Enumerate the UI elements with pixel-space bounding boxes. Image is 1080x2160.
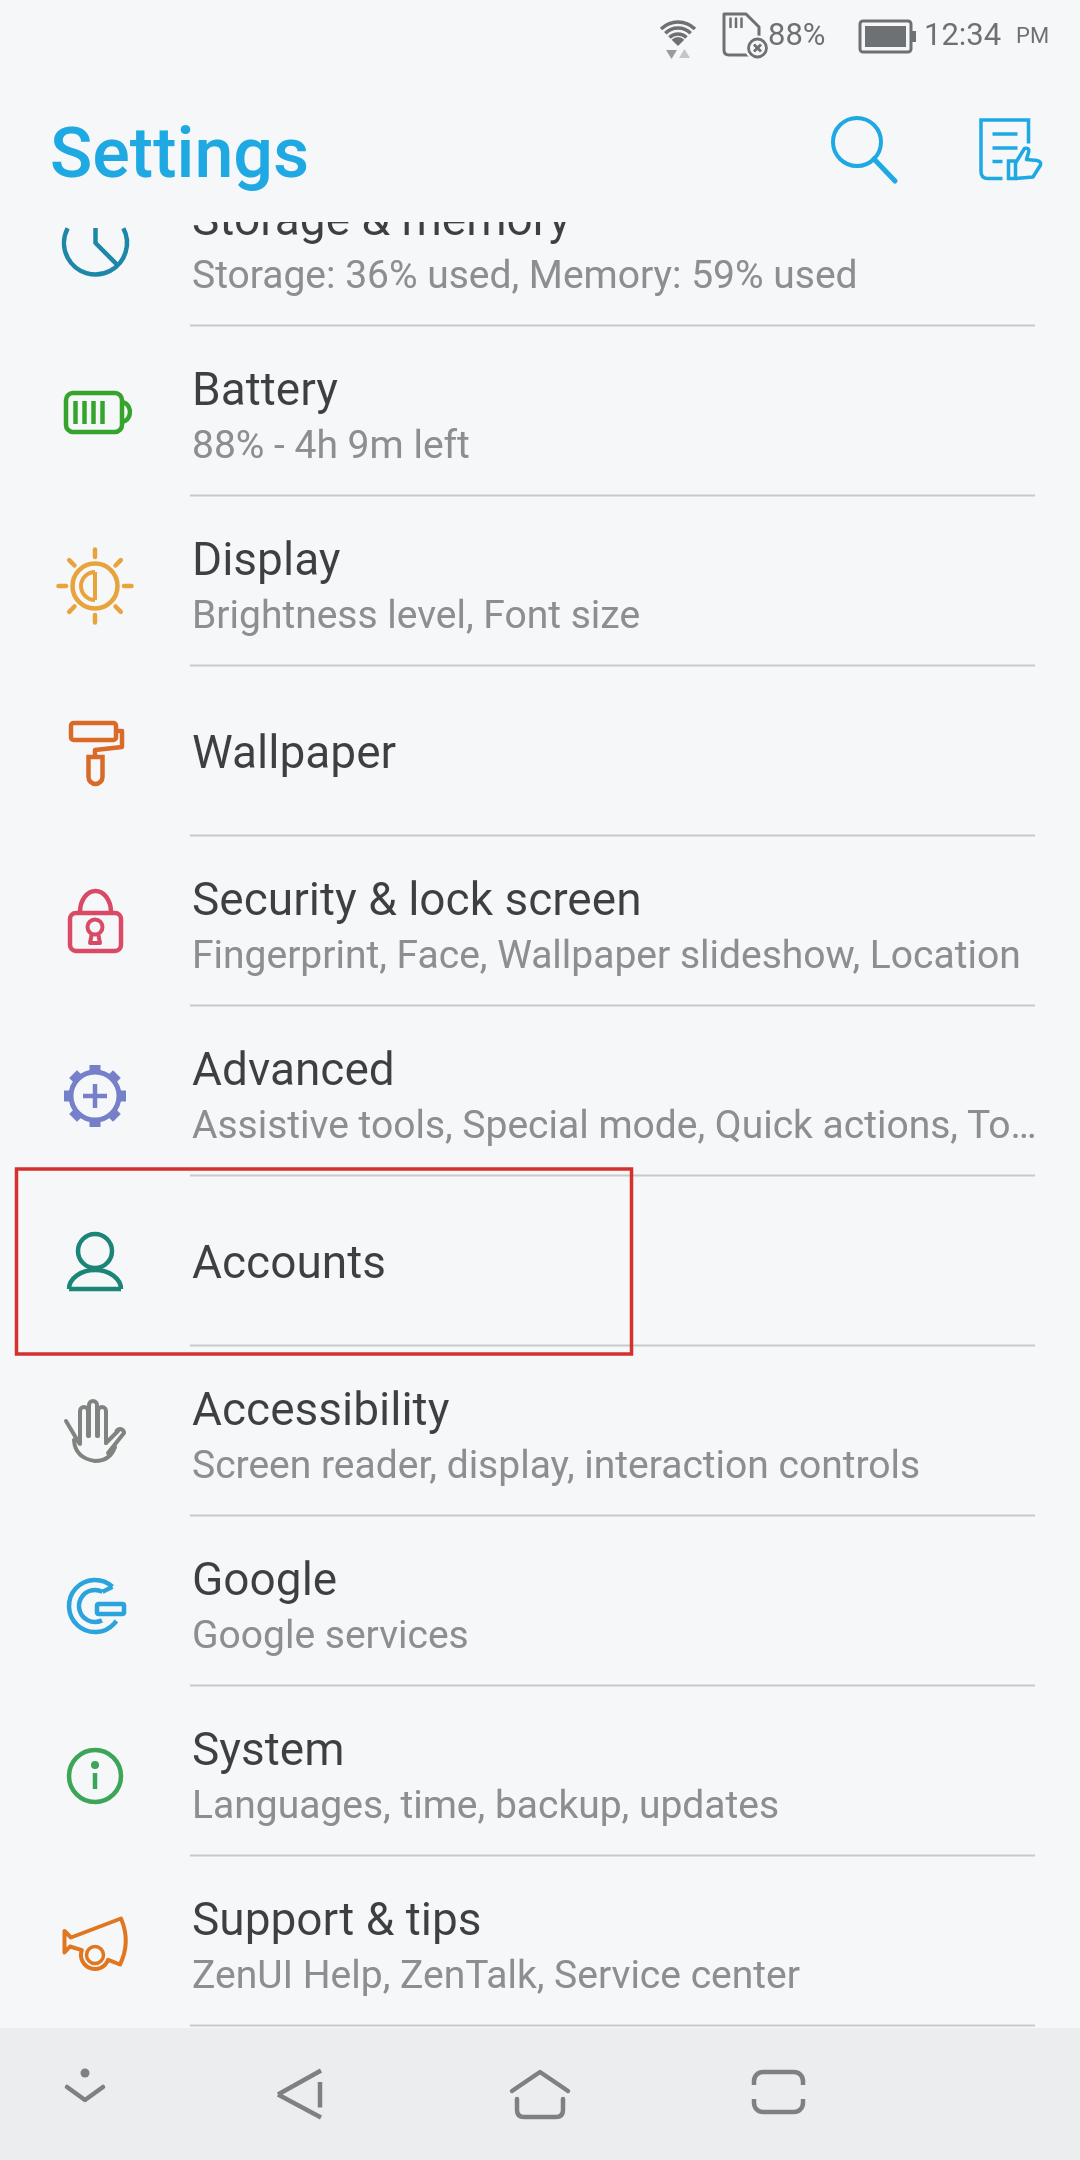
staticText: ZenUI Help, ZenTalk, Service center (192, 1952, 800, 1998)
staticText: Accounts (192, 1235, 386, 1289)
staticText: Brightness level, Font size (192, 592, 641, 638)
button[interactable]: Support & tips (0, 1856, 1080, 2026)
staticText: Security & lock screen (192, 872, 642, 926)
staticText: 88% (768, 16, 826, 52)
staticText: Accessibility (192, 1382, 450, 1436)
staticText: Wallpaper (192, 725, 397, 779)
staticText: PM (1016, 23, 1050, 49)
staticText: Fingerprint, Face, Wallpaper slideshow, … (192, 932, 1021, 978)
button[interactable] (809, 94, 905, 190)
button[interactable]: Security & lock screen (0, 836, 1080, 1006)
staticText: Settings (50, 112, 310, 194)
staticText: Assistive tools, Special mode, Quick act… (192, 1102, 1037, 1148)
button[interactable] (723, 2037, 833, 2147)
button[interactable] (245, 2039, 355, 2149)
button[interactable]: Google (0, 1516, 1080, 1686)
staticText: Storage & memory (192, 192, 571, 246)
staticText: Screen reader, display, interaction cont… (192, 1442, 921, 1488)
staticText: Battery (192, 362, 338, 416)
staticText: Advanced (192, 1042, 395, 1096)
button[interactable]: Wallpaper (0, 666, 1080, 836)
staticText: Languages, time, backup, updates (192, 1782, 780, 1828)
button[interactable]: Advanced (0, 1006, 1080, 1176)
staticText: Storage: 36% used, Memory: 59% used (192, 252, 858, 298)
button[interactable]: Display (0, 496, 1080, 666)
button[interactable]: Storage & memory (0, 156, 1080, 326)
button[interactable] (485, 2039, 595, 2149)
button[interactable]: System (0, 1686, 1080, 1856)
button[interactable]: Accessibility (0, 1346, 1080, 1516)
staticText: 88% - 4h 9m left (192, 422, 470, 468)
button[interactable] (30, 2037, 140, 2147)
staticText: Support & tips (192, 1892, 482, 1946)
staticText: Google services (192, 1612, 469, 1658)
button[interactable] (965, 95, 1061, 191)
staticText: Display (192, 532, 341, 586)
button[interactable]: Accounts (0, 1176, 1080, 1346)
staticText: 12:34 (924, 16, 1002, 52)
button[interactable]: Battery (0, 326, 1080, 496)
staticText: System (192, 1722, 345, 1776)
staticText: Google (192, 1552, 338, 1606)
